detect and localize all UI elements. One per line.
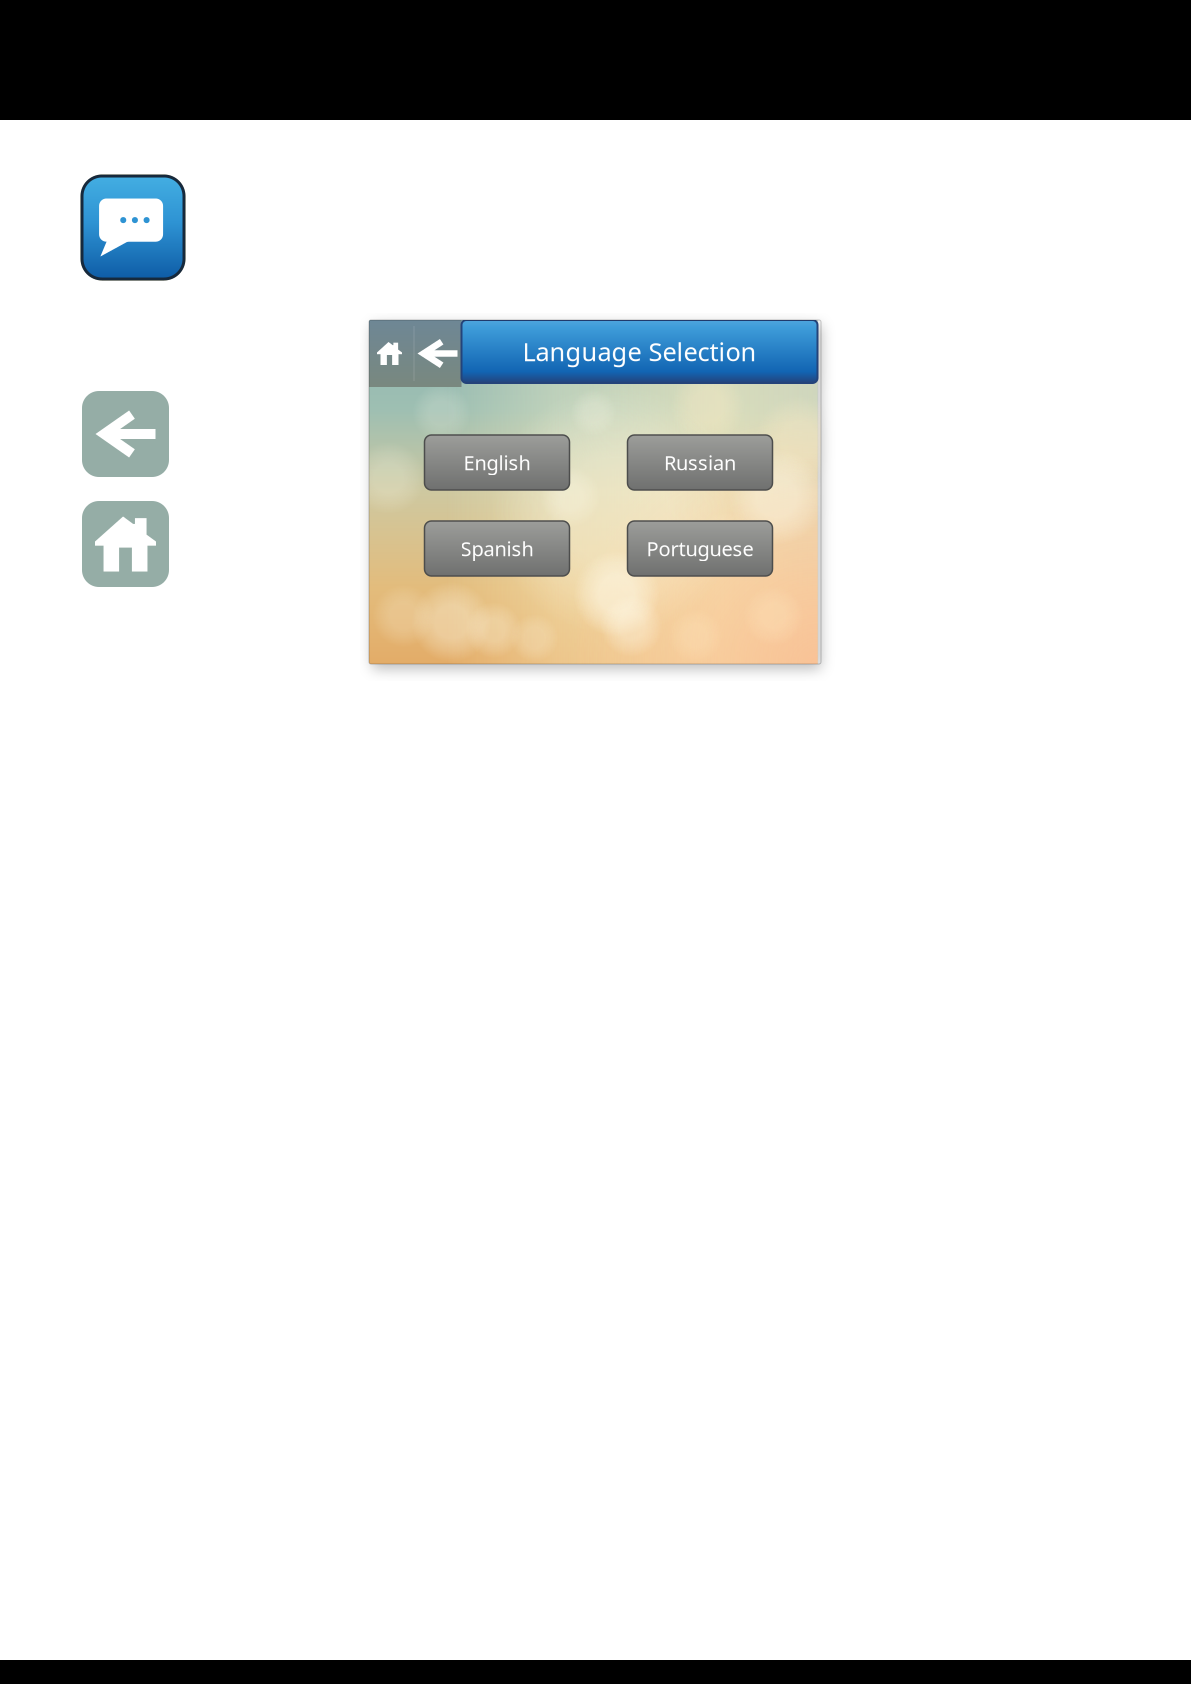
staticText: Language Selection bbox=[522, 335, 756, 368]
button[interactable]: Russian bbox=[627, 435, 772, 490]
staticText: Portuguese bbox=[646, 535, 753, 562]
button[interactable]: Home bbox=[365, 320, 413, 387]
button[interactable]: Portuguese bbox=[627, 521, 772, 576]
button[interactable]: Home bbox=[82, 501, 169, 587]
button[interactable]: Back bbox=[82, 391, 169, 477]
button[interactable]: Spanish bbox=[424, 521, 569, 576]
button[interactable]: English bbox=[424, 435, 569, 490]
button[interactable]: Back bbox=[413, 320, 461, 387]
staticText: Spanish bbox=[460, 535, 533, 562]
staticText: Russian bbox=[664, 449, 736, 476]
button[interactable]: Messages app icon bbox=[82, 176, 184, 279]
staticText: English bbox=[463, 449, 530, 476]
